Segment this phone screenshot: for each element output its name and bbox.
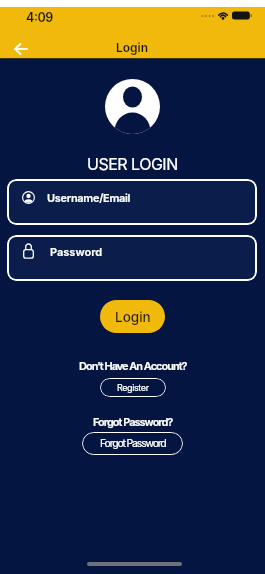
- staticText: USER LOGIN: [87, 154, 178, 173]
- staticText: Forgot Password?: [93, 415, 173, 428]
- button[interactable]: Password: [7, 235, 257, 281]
- staticText: Login: [116, 40, 149, 55]
- staticText: Password: [50, 245, 103, 258]
- button[interactable]: Login: [100, 300, 165, 333]
- button[interactable]: Username/Email: [7, 179, 257, 225]
- staticText: Login: [115, 309, 151, 325]
- staticText: Username/Email: [47, 191, 131, 204]
- staticText: 4:09: [26, 10, 53, 25]
- staticText: Register: [117, 382, 149, 393]
- button[interactable]: Register: [100, 378, 166, 397]
- staticText: Forgot Password: [100, 437, 166, 450]
- staticText: Don't Have An Account?: [79, 359, 187, 372]
- button[interactable]: [10, 39, 32, 59]
- button[interactable]: Forgot Password: [82, 432, 183, 455]
